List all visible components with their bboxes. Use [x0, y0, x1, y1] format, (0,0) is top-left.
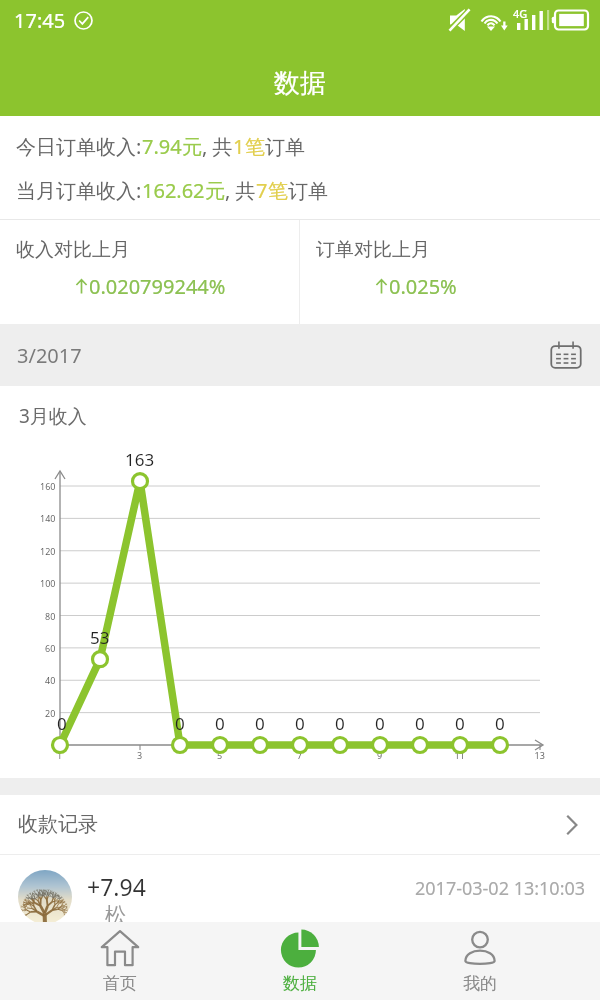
button[interactable]: 我的: [390, 922, 570, 1000]
staticText: 7: [256, 177, 268, 204]
staticText: 2017-03-02 13:10:03: [415, 876, 586, 901]
staticText: 1: [233, 133, 245, 160]
staticText: 订单对比上月: [316, 238, 430, 262]
staticText: 收入对比上月: [16, 238, 130, 262]
staticText: 元: [182, 135, 202, 160]
staticText: 订单: [265, 135, 305, 160]
staticText: 松: [105, 902, 126, 928]
staticText: 3/2017: [17, 342, 82, 369]
staticText: 162.62: [142, 177, 205, 204]
staticText: , 共: [202, 133, 233, 160]
staticText: 数据: [274, 67, 326, 100]
staticText: 3月收入: [19, 403, 87, 429]
button[interactable]: 收入对比上月: [0, 220, 299, 324]
button[interactable]: 数据: [210, 922, 390, 1000]
button[interactable]: 首页: [30, 922, 210, 1000]
staticText: 笔: [268, 179, 288, 204]
button[interactable]: Calendar: [550, 339, 582, 371]
staticText: 笔: [245, 135, 265, 160]
staticText: 首页: [103, 973, 137, 994]
staticText: 收款记录: [18, 812, 98, 837]
staticText: 订单: [288, 179, 328, 204]
button[interactable]: 订单对比上月: [300, 220, 600, 324]
staticText: 17:45: [14, 7, 66, 34]
button[interactable]: +7.94: [0, 855, 600, 922]
button[interactable]: 收款记录: [0, 795, 600, 854]
staticText: 今日订单收入:: [16, 133, 142, 160]
staticText: 0.025%: [389, 273, 457, 300]
staticText: 当月订单收入:: [16, 177, 142, 204]
staticText: +7.94: [87, 871, 146, 902]
staticText: 元: [205, 179, 225, 204]
staticText: 7.94: [142, 133, 182, 160]
staticText: 我的: [463, 973, 497, 994]
button[interactable]: 3/2017: [0, 324, 600, 386]
staticText: 0.020799244%: [89, 273, 226, 300]
staticText: 数据: [283, 973, 317, 994]
staticText: , 共: [225, 177, 256, 204]
staticText: 4G: [513, 6, 528, 21]
